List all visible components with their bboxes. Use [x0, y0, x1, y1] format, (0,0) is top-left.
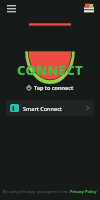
button[interactable]: By using this app, you agree to the — [3, 189, 97, 194]
staticText: CONNECT — [17, 61, 83, 79]
button[interactable]: Tap to connect — [23, 83, 77, 92]
button[interactable]: Smart Connect — [6, 100, 94, 116]
button[interactable]: Promotions — [82, 1, 96, 15]
staticText: Smart Connect — [23, 105, 62, 112]
staticText: By using this app, you agree to the — [3, 189, 70, 194]
staticText: Tap to connect — [34, 84, 74, 91]
staticText: Privacy Policy — [70, 189, 97, 194]
button[interactable]: Menu — [4, 1, 18, 15]
